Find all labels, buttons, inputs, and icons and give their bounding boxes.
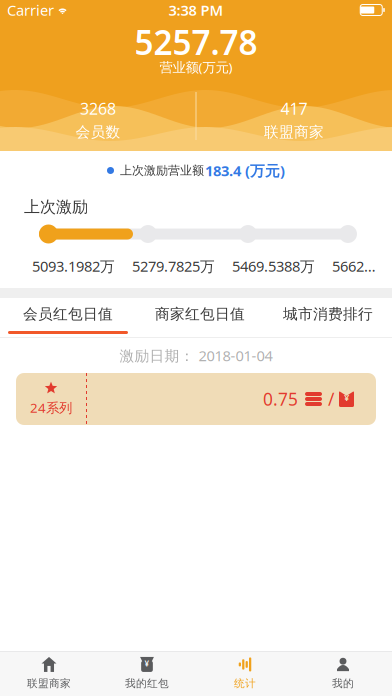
staticText: 3:38 PM: [168, 0, 223, 20]
staticText: 统计: [234, 677, 256, 690]
staticText: 0.75: [263, 387, 298, 410]
staticText: 营业额(万元): [159, 58, 232, 76]
staticText: ¥: [144, 658, 149, 669]
staticText: 上次激励营业额: [120, 163, 204, 178]
button[interactable]: 统计: [196, 652, 294, 696]
staticText: 会员数: [75, 123, 120, 141]
button[interactable]: 24系列: [16, 373, 376, 425]
staticText: 5093.1982万: [32, 256, 115, 276]
button[interactable]: 我的: [294, 652, 392, 696]
staticText: 会员红包日值: [23, 305, 113, 323]
staticText: 5469.5388万: [232, 256, 315, 276]
staticText: 3268: [80, 98, 116, 119]
button[interactable]: ¥: [98, 652, 196, 696]
staticText: 我的: [332, 677, 354, 690]
button[interactable]: 会员红包日值: [0, 296, 136, 332]
button[interactable]: 联盟商家: [0, 652, 98, 696]
staticText: 激励日期： 2018-01-04: [119, 346, 272, 365]
staticText: 我的红包: [125, 677, 169, 690]
staticText: 24系列: [30, 399, 72, 416]
button[interactable]: 城市消费排行: [264, 296, 392, 332]
staticText: 5662.521: [332, 256, 378, 276]
staticText: 183.4 (万元): [205, 161, 285, 180]
staticText: 商家红包日值: [155, 305, 245, 323]
button[interactable]: 商家红包日值: [136, 296, 264, 332]
staticText: /: [328, 387, 334, 410]
staticText: 上次激励: [24, 197, 88, 217]
staticText: ¥: [344, 391, 349, 404]
staticText: Carrier: [7, 0, 54, 20]
staticText: 417: [280, 98, 307, 119]
staticText: 5279.7825万: [132, 256, 215, 276]
staticText: 5257.78: [134, 20, 257, 64]
staticText: 联盟商家: [27, 677, 71, 690]
staticText: 联盟商家: [264, 123, 324, 141]
staticText: 城市消费排行: [283, 305, 373, 323]
